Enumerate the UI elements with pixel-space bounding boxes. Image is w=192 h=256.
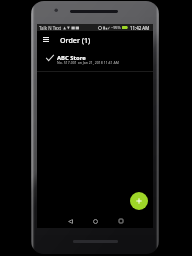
staticText: ~95% <box>111 25 121 30</box>
button[interactable]: Back <box>62 213 78 229</box>
button[interactable]: Open navigation menu <box>37 31 54 48</box>
button[interactable]: Home <box>87 213 103 229</box>
staticText: Talk N Text <box>39 25 62 31</box>
staticText: Order (1) <box>60 35 91 45</box>
staticText: 11:42 AM <box>130 25 150 31</box>
staticText: No. 517-001 on Jan 21, 2018 11:41 AM <box>57 60 119 65</box>
button[interactable]: Add order <box>130 192 148 210</box>
staticText: ABC Store <box>57 54 86 62</box>
button[interactable]: ABC Store <box>37 48 153 71</box>
button[interactable]: Recent apps <box>113 213 129 229</box>
